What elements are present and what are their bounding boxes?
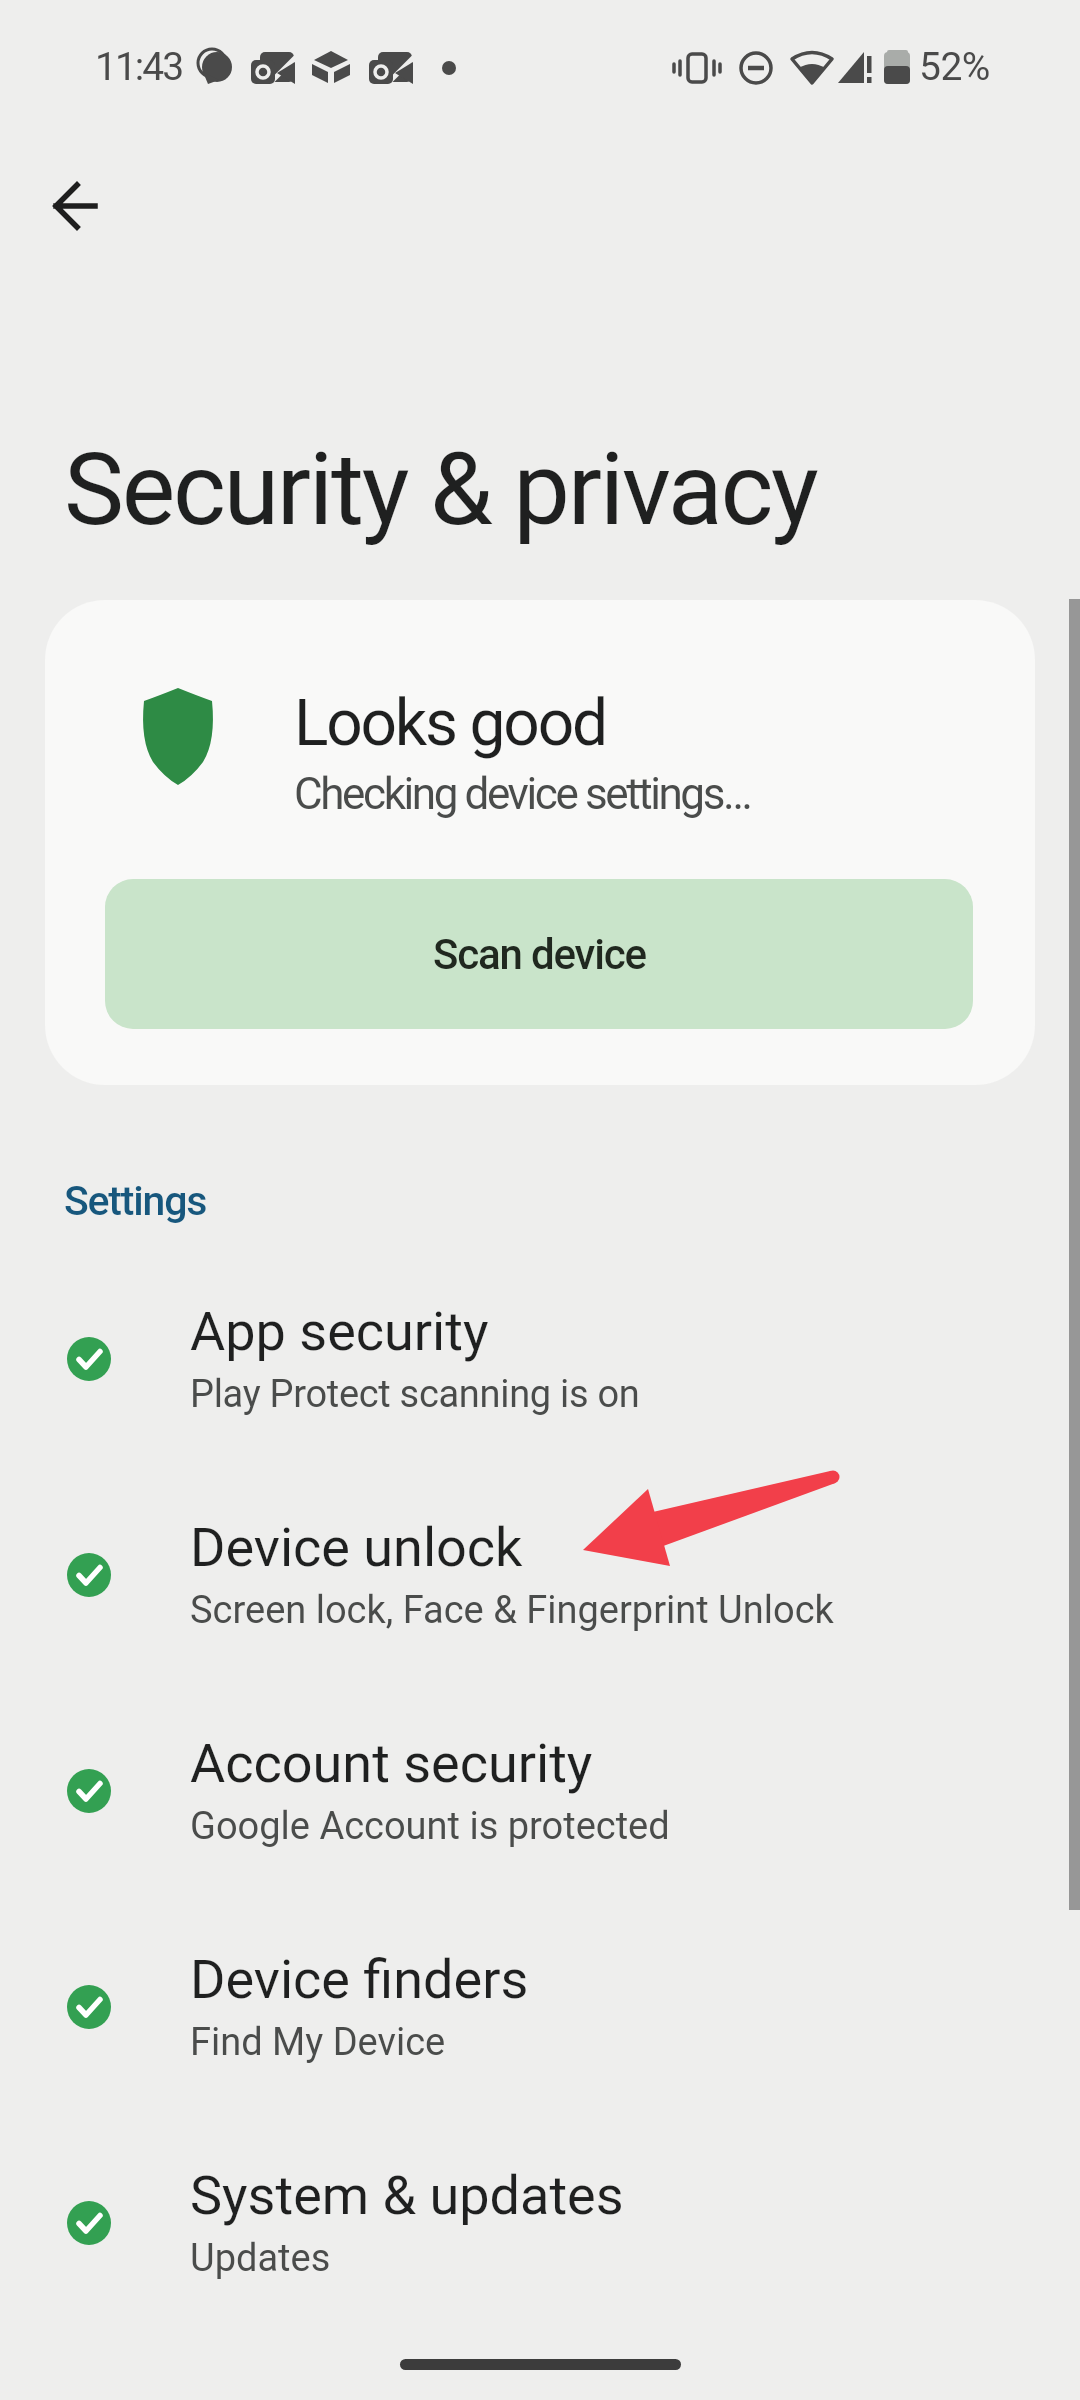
staticText: Scan device (433, 930, 646, 979)
button[interactable]: Device unlock (0, 1486, 1080, 1702)
staticText: Screen lock, Face & Fingerprint Unlock (190, 1588, 834, 1633)
staticText: Google Account is protected (190, 1804, 670, 1849)
button[interactable] (32, 164, 116, 248)
staticText: Play Protect scanning is on (190, 1372, 640, 1417)
staticText: Updates (190, 2236, 331, 2281)
staticText: Account security (190, 1732, 593, 1795)
staticText: Device finders (190, 1948, 529, 2011)
button[interactable]: Account security (0, 1702, 1080, 1918)
button[interactable]: Device finders (0, 1918, 1080, 2134)
staticText: Looks good (294, 686, 606, 761)
button[interactable] (105, 879, 973, 1029)
staticText: Checking device settings… (294, 768, 750, 820)
button[interactable]: App security (0, 1270, 1080, 1486)
staticText: Device unlock (190, 1516, 523, 1579)
button[interactable]: System & updates (0, 2134, 1080, 2350)
staticText: 11:43 (95, 44, 183, 90)
staticText: Security & privacy (64, 430, 817, 548)
staticText: System & updates (190, 2164, 624, 2227)
staticText: 52% (919, 44, 990, 90)
staticText: Find My Device (190, 2020, 446, 2065)
staticText: App security (190, 1300, 489, 1363)
staticText: Settings (64, 1177, 207, 1225)
